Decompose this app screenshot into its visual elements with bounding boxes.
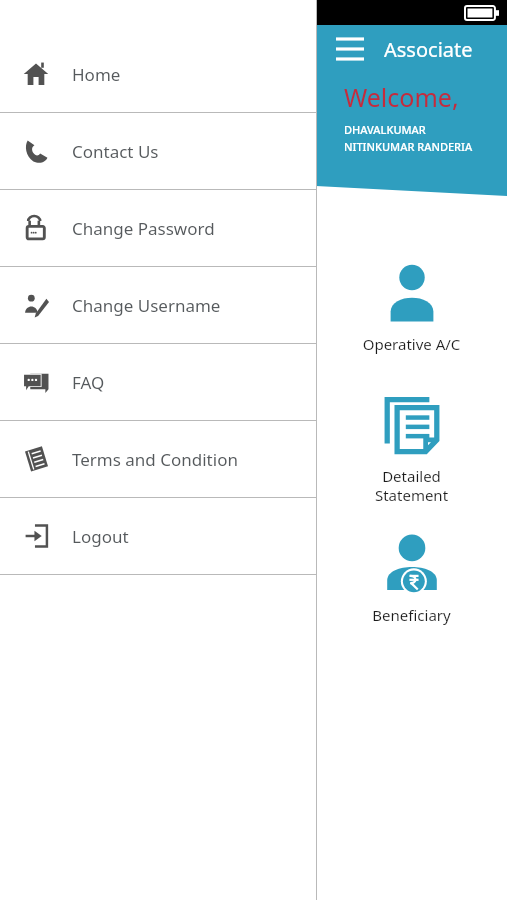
button[interactable]: Beneficiary: [316, 533, 507, 625]
staticText: Logout: [72, 525, 129, 548]
button[interactable]: Change Username: [0, 267, 317, 343]
staticText: Change Password: [72, 217, 215, 240]
staticText: Detailed Statement: [316, 466, 507, 505]
staticText: FAQ: [72, 371, 105, 394]
button[interactable]: Home: [0, 36, 317, 112]
button[interactable]: Terms and Condition: [0, 421, 317, 497]
button[interactable]: Logout: [0, 498, 317, 574]
staticText: Home: [72, 63, 121, 86]
button[interactable]: Contact Us: [0, 113, 317, 189]
staticText: Contact Us: [72, 140, 159, 163]
staticText: NITINKUMAR RANDERIA: [344, 139, 473, 154]
button[interactable]: FAQ: [0, 344, 317, 420]
other: Battery: [465, 6, 499, 20]
staticText: Associate: [384, 36, 473, 63]
staticText: Terms and Condition: [72, 448, 238, 471]
staticText: Change Username: [72, 294, 221, 317]
staticText: Welcome,: [344, 80, 459, 114]
staticText: Operative A/C: [316, 334, 507, 354]
button[interactable]: Change Password: [0, 190, 317, 266]
button[interactable]: Open navigation drawer: [330, 29, 370, 69]
staticText: Beneficiary: [316, 605, 507, 625]
button[interactable]: Operative A/C: [316, 262, 507, 354]
staticText: DHAVALKUMAR: [344, 122, 426, 137]
button[interactable]: Detailed Statement: [316, 394, 507, 505]
